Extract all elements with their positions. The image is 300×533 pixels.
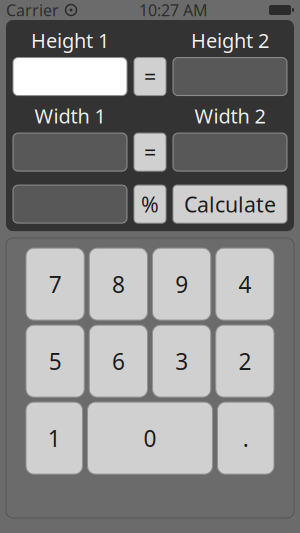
button[interactable]: 1 <box>26 402 82 474</box>
staticText: 8 <box>112 269 125 299</box>
button[interactable]: 7 <box>26 248 84 320</box>
staticText: % <box>141 190 159 218</box>
button[interactable]: 2 <box>216 325 274 397</box>
button[interactable]: 3 <box>152 325 211 397</box>
staticText: 4 <box>238 269 251 299</box>
button[interactable]: 4 <box>216 248 274 320</box>
button[interactable]: 0 <box>87 402 212 474</box>
staticText: 9 <box>175 269 188 299</box>
staticText: Height 1 <box>31 27 109 54</box>
staticText: 3 <box>175 346 188 376</box>
staticText: 0 <box>143 423 156 453</box>
staticText: = <box>144 138 156 166</box>
staticText: Width 1 <box>34 103 105 129</box>
button[interactable]: 6 <box>89 325 147 397</box>
button[interactable]: 8 <box>89 248 147 320</box>
staticText: 6 <box>112 346 125 376</box>
staticText: Width 2 <box>194 103 265 129</box>
button[interactable]: 9 <box>152 248 211 320</box>
button[interactable]: . <box>217 402 274 474</box>
staticText: Carrier <box>6 0 59 21</box>
staticText: 10:27 AM <box>139 0 208 21</box>
button[interactable]: = <box>134 133 166 171</box>
staticText: 5 <box>49 346 62 376</box>
button[interactable]: Calculate <box>173 185 287 223</box>
button[interactable]: 5 <box>26 325 84 397</box>
staticText: 1 <box>48 423 61 453</box>
staticText: 7 <box>49 269 62 299</box>
staticText: = <box>144 62 156 91</box>
button[interactable]: % <box>134 185 166 223</box>
staticText: Height 2 <box>191 27 269 54</box>
staticText: . <box>243 423 249 453</box>
staticText: Calculate <box>184 190 276 218</box>
staticText: 2 <box>238 346 251 376</box>
button[interactable]: = <box>134 58 166 96</box>
